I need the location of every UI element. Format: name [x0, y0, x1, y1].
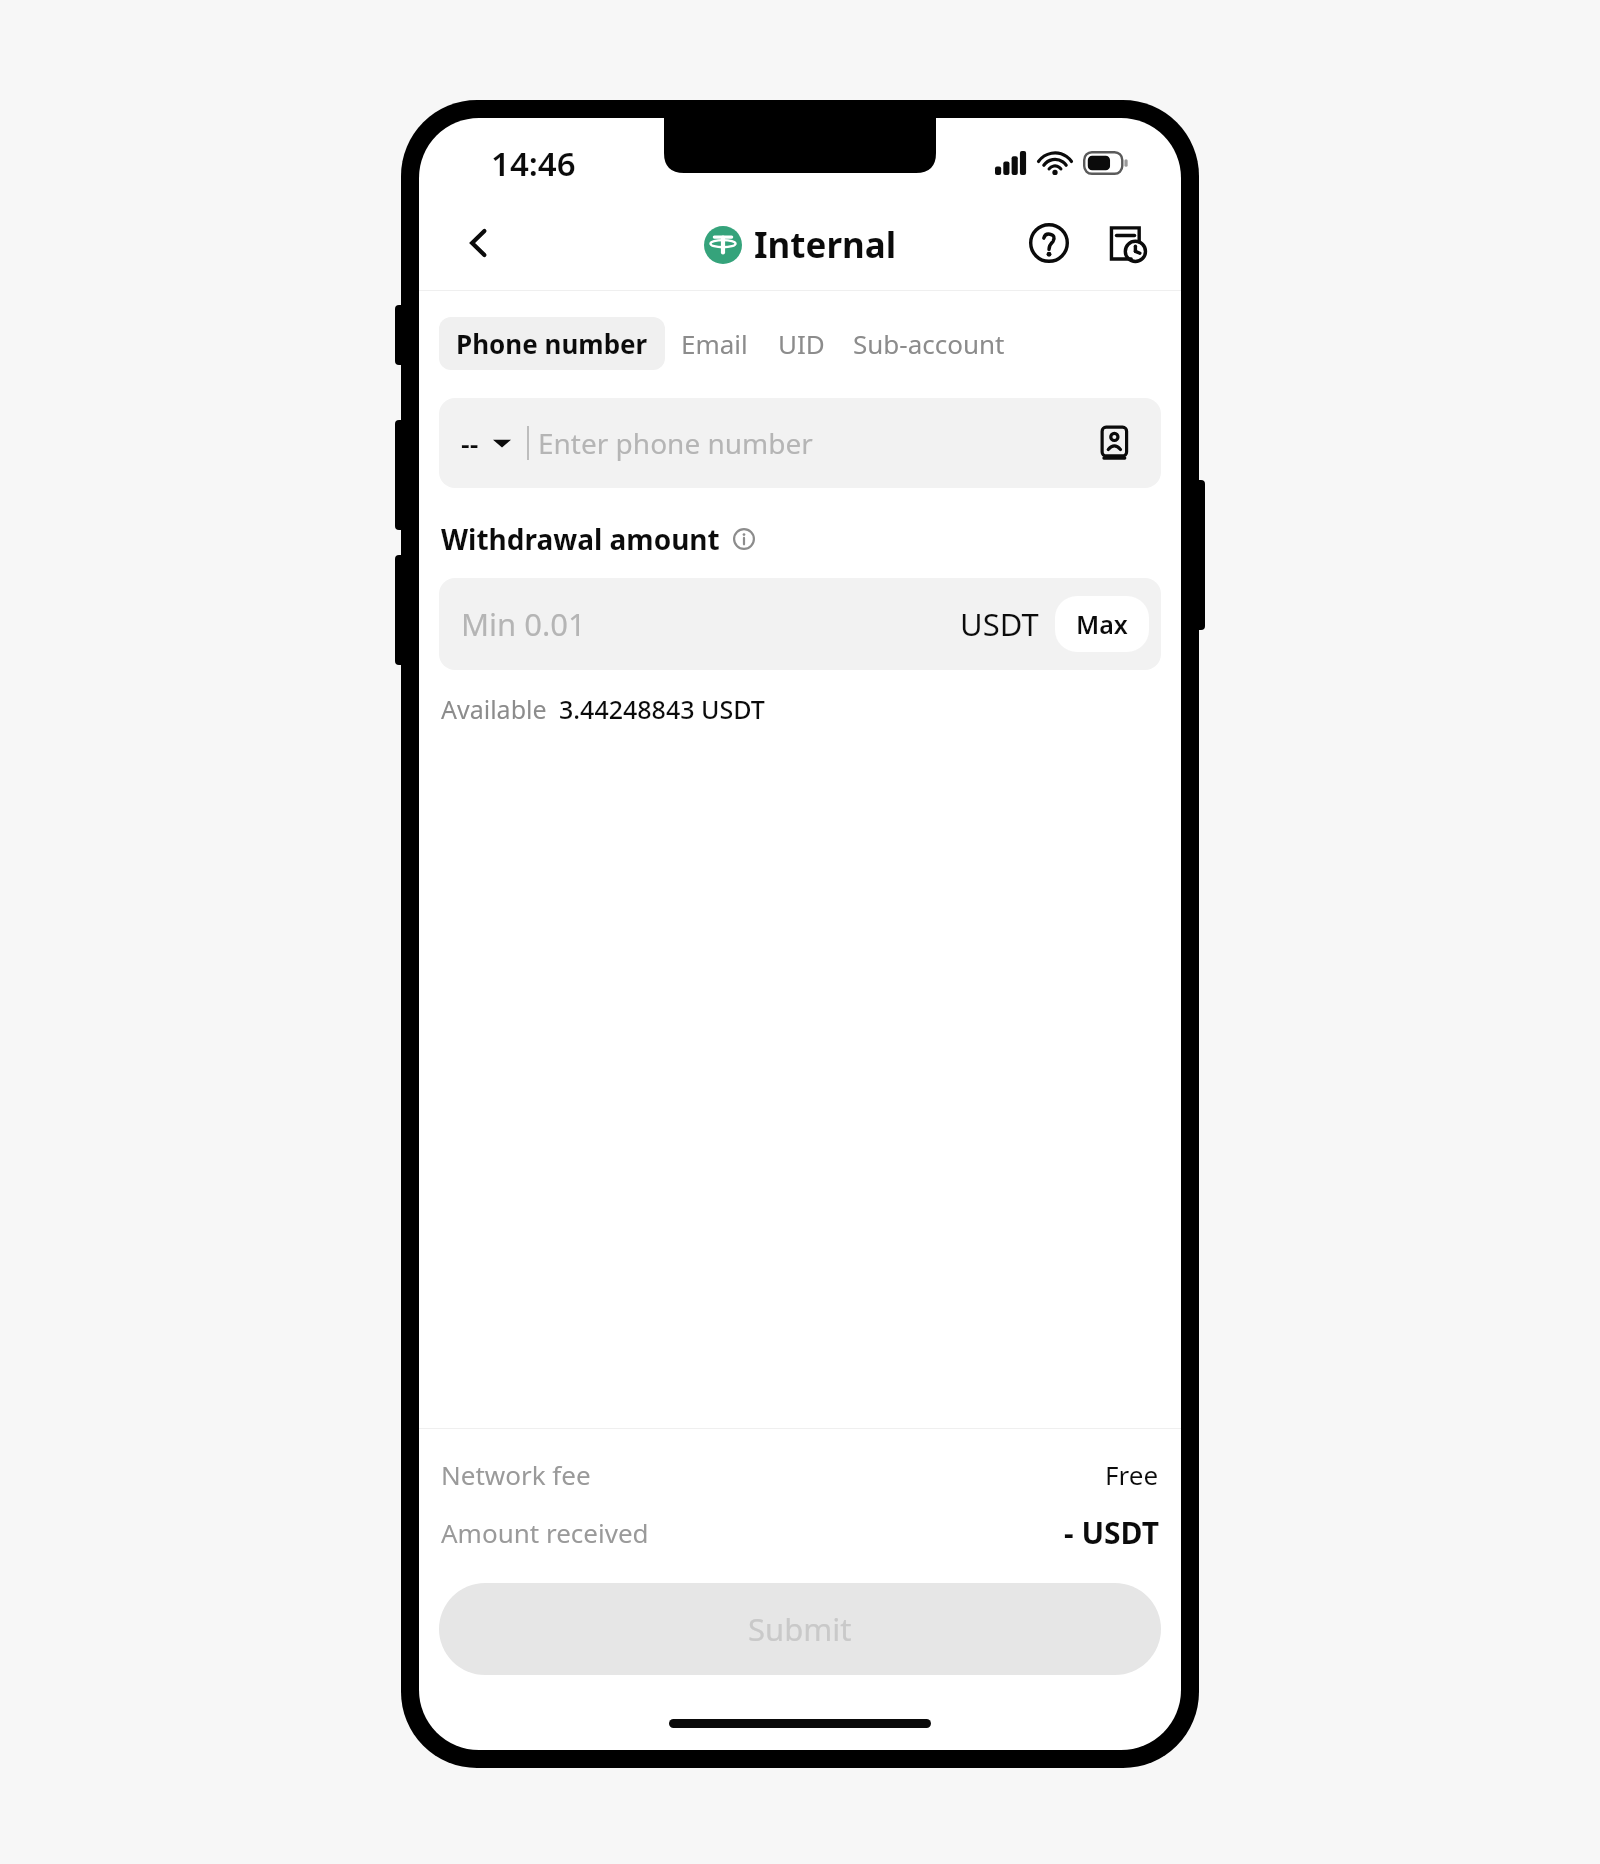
- button[interactable]: Info: [729, 524, 759, 554]
- staticText: Network fee: [441, 1457, 591, 1492]
- staticText: Phone number: [456, 326, 648, 361]
- staticText: Enter phone number: [538, 424, 813, 462]
- staticText: USDT: [960, 603, 1039, 645]
- staticText: Sub-account: [853, 326, 1005, 361]
- button[interactable]: Min 0.01: [439, 578, 1161, 670]
- staticText: Internal: [754, 221, 897, 269]
- staticText: - USDT: [1064, 1512, 1159, 1553]
- staticText: Submit: [748, 1608, 852, 1650]
- staticText: Max: [1076, 607, 1128, 641]
- button[interactable]: Sub-account: [839, 317, 1019, 370]
- button[interactable]: Max: [1055, 596, 1149, 652]
- button[interactable]: --: [439, 398, 1161, 488]
- staticText: Available: [441, 692, 547, 726]
- staticText: Min 0.01: [461, 603, 586, 645]
- button[interactable]: Help: [1017, 211, 1081, 275]
- button[interactable]: Email: [665, 317, 764, 370]
- button[interactable]: Choose from contacts: [1089, 418, 1139, 468]
- button[interactable]: Transaction history: [1095, 211, 1159, 275]
- staticText: Free: [1105, 1457, 1159, 1492]
- staticText: 3.44248843 USDT: [559, 692, 765, 726]
- staticText: Withdrawal amount: [441, 520, 720, 558]
- button[interactable]: UID: [764, 317, 839, 370]
- staticText: 14:46: [491, 141, 576, 186]
- button[interactable]: Back: [447, 211, 511, 275]
- staticText: Amount received: [441, 1515, 649, 1550]
- staticText: UID: [778, 326, 825, 361]
- button[interactable]: Submit: [439, 1583, 1161, 1675]
- button[interactable]: Phone number: [439, 317, 665, 370]
- staticText: Email: [681, 326, 748, 361]
- staticText: --: [461, 425, 479, 462]
